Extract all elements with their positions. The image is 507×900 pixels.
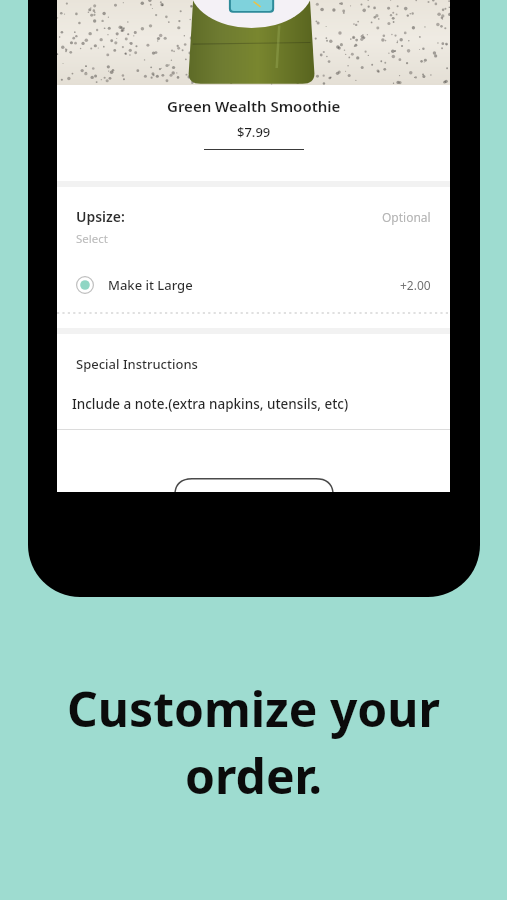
- button[interactable]: [174, 478, 334, 492]
- staticText: Upsize:: [76, 207, 125, 226]
- staticText: Include a note.(extra napkins, utensils,…: [72, 395, 349, 413]
- staticText: Special Instructions: [76, 355, 198, 373]
- staticText: Select: [76, 231, 108, 247]
- button[interactable]: Make it Large: [57, 267, 450, 303]
- staticText: Optional: [382, 209, 431, 225]
- staticText: +2.00: [400, 277, 431, 293]
- staticText: Make it Large: [108, 276, 193, 294]
- staticText: order.: [185, 743, 322, 808]
- staticText: $7.99: [237, 123, 271, 141]
- staticText: Customize your: [67, 676, 440, 741]
- button[interactable]: Include a note.(extra napkins, utensils,…: [57, 395, 450, 413]
- staticText: Green Wealth Smoothie: [167, 96, 341, 116]
